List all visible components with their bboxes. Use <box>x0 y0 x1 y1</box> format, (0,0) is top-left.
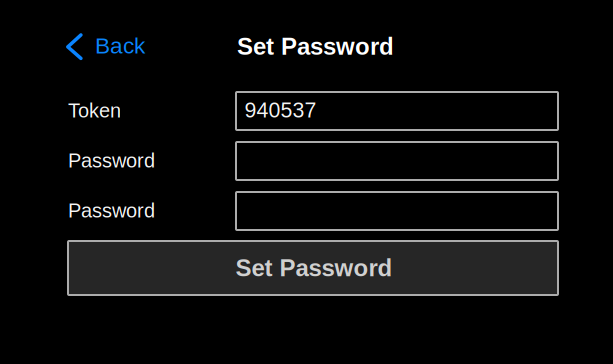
staticText: Token <box>68 99 121 122</box>
button[interactable]: Confirm Password <box>236 192 558 230</box>
staticText: Password <box>68 149 155 172</box>
staticText: Set Password <box>237 33 394 60</box>
staticText: Back <box>95 33 145 58</box>
button[interactable]: Set Password <box>68 241 558 295</box>
button[interactable]: Token <box>236 92 558 130</box>
staticText: Password <box>68 199 155 222</box>
button[interactable]: Password <box>236 142 558 180</box>
button[interactable]: Back <box>66 27 145 66</box>
staticText: Set Password <box>235 255 392 281</box>
staticText: 940537 <box>244 98 316 122</box>
